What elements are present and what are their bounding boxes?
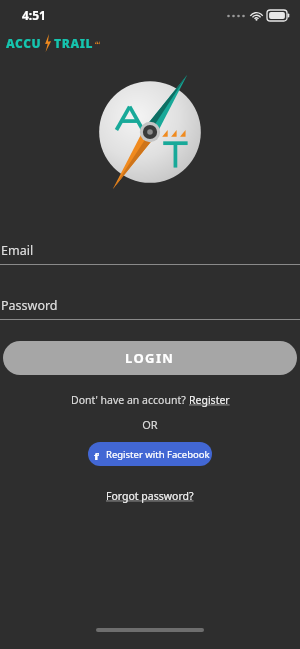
staticText: f [94,449,99,460]
button[interactable]: Password [0,297,300,320]
staticText: ACCU [6,35,42,51]
staticText: Password [1,297,58,314]
button[interactable]: Register [189,393,230,407]
button[interactable]: Email [0,242,300,265]
button[interactable]: Facebook [88,442,212,466]
staticText: Forgot password? [106,489,194,503]
staticText: Register with Facebook [106,448,210,461]
staticText: Dont' have an account? [71,393,189,407]
other: Facebook [91,449,102,460]
staticText: LOGIN [125,349,175,367]
button[interactable]: Forgot password? [106,489,194,503]
button[interactable]: LOGIN [3,341,297,375]
staticText: OR [0,417,300,432]
staticText: 4:51 [22,7,46,23]
staticText: Email [1,242,34,259]
staticText: TRAIL [54,35,94,51]
staticText: Register [189,393,230,407]
